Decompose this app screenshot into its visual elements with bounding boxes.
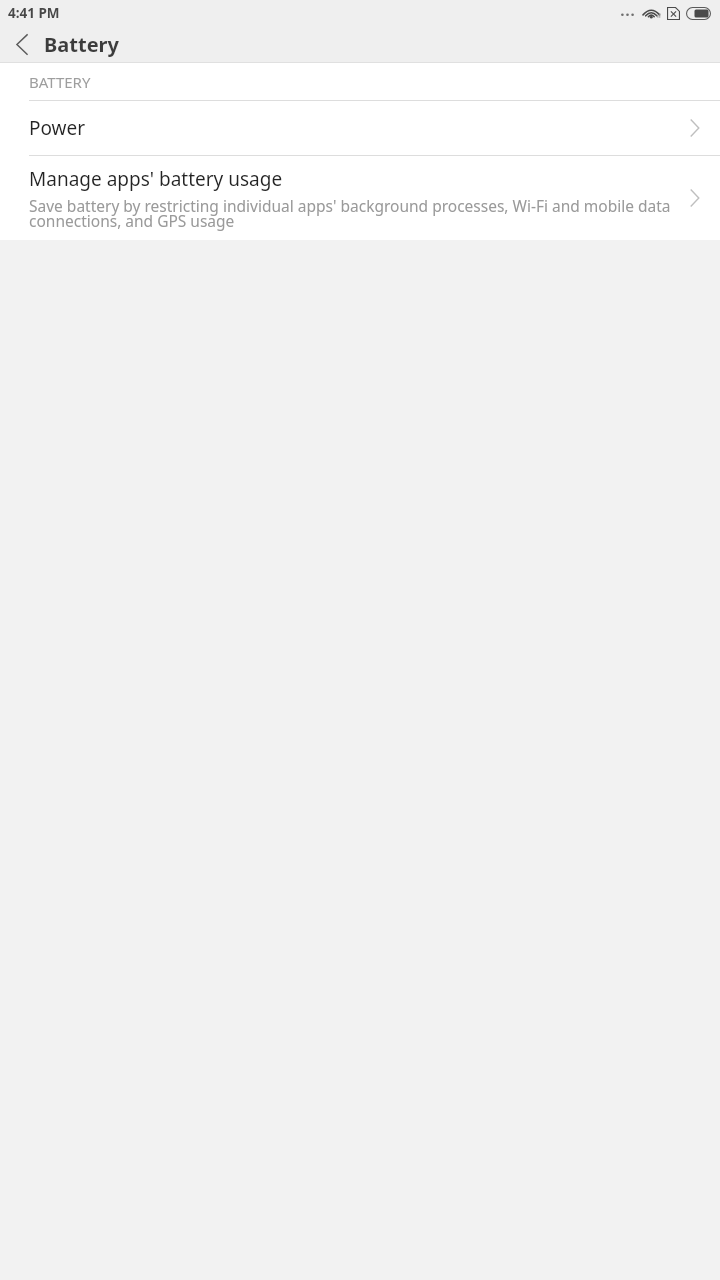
staticText: Power	[29, 115, 690, 141]
staticText: 4:41 PM	[8, 4, 60, 22]
staticText: Manage apps' battery usage	[29, 166, 283, 192]
button[interactable]: Back	[0, 26, 44, 63]
staticText: Battery	[44, 31, 119, 58]
button[interactable]: Power	[0, 101, 720, 155]
button[interactable]: Manage apps' battery usage	[0, 156, 720, 240]
staticText: Save battery by restricting individual a…	[29, 195, 680, 231]
staticText: BATTERY	[29, 72, 91, 92]
